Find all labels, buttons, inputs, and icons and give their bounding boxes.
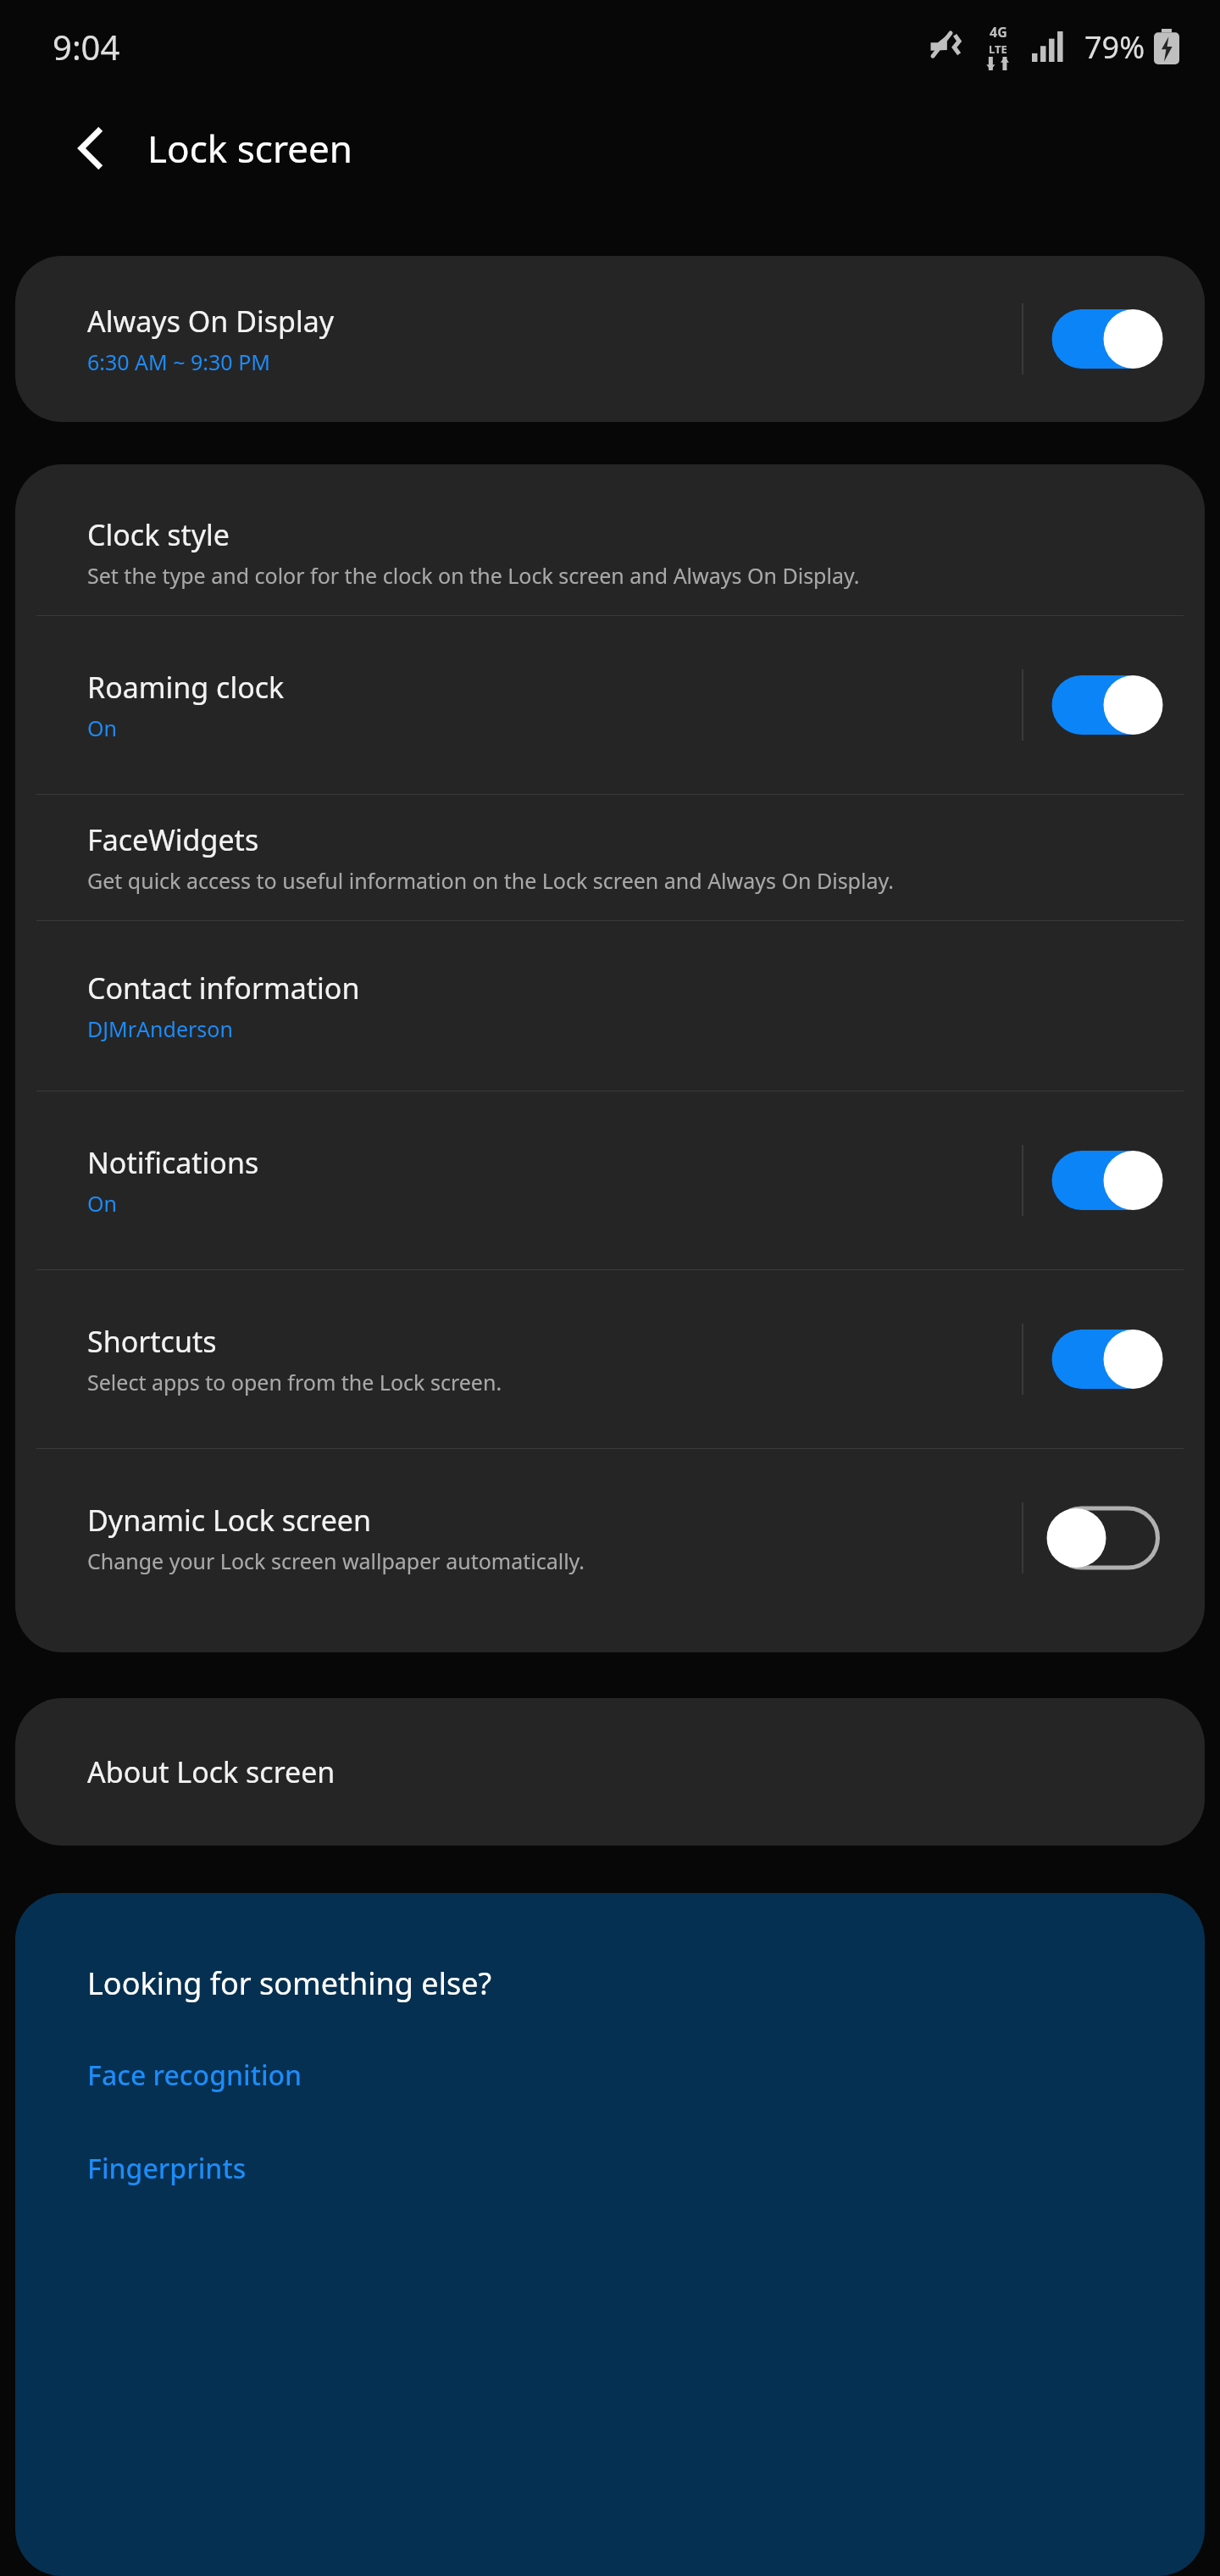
button[interactable]: Back [51,108,132,189]
button[interactable]: Contact information [15,921,1205,1091]
staticText: Notifications [87,1143,259,1182]
staticText: Fingerprints [87,2150,247,2187]
staticText: Always On Display [87,302,335,341]
staticText: Get quick access to useful information o… [87,866,894,895]
staticText: DJMrAnderson [87,1014,233,1043]
staticText: LTE [989,42,1007,57]
button[interactable]: Fingerprints [15,2140,1205,2197]
button[interactable]: Face recognition [15,2046,1205,2104]
staticText: 6:30 AM ~ 9:30 PM [87,347,270,376]
staticText: On [87,1189,117,1218]
button[interactable]: FaceWidgets [15,795,1205,920]
button[interactable]: Shortcuts [15,1270,1205,1448]
staticText: Shortcuts [87,1322,217,1361]
staticText: Dynamic Lock screen [87,1501,372,1540]
staticText: Change your Lock screen wallpaper automa… [87,1546,585,1575]
button[interactable]: Toggle on [1049,303,1161,375]
staticText: 4G [990,23,1007,42]
staticText: 79% [1084,26,1145,68]
button[interactable]: Toggle off [1049,1502,1161,1574]
staticText: Face recognition [87,2057,302,2094]
staticText: Looking for something else? [87,1963,492,2004]
staticText: 9:04 [53,24,120,69]
staticText: On [87,713,117,742]
button[interactable]: Toggle on [1049,1324,1161,1395]
button[interactable]: Always On Display [15,256,1205,422]
button[interactable]: Toggle on [1049,669,1161,741]
staticText: Clock style [87,515,230,554]
button[interactable]: Dynamic Lock screen [15,1449,1205,1627]
staticText: Roaming clock [87,668,285,707]
button[interactable]: Toggle on [1049,1145,1161,1216]
button[interactable]: Clock style [15,490,1205,615]
staticText: Select apps to open from the Lock screen… [87,1368,502,1396]
button[interactable]: Notifications [15,1091,1205,1269]
staticText: About Lock screen [87,1752,335,1791]
staticText: Contact information [87,969,360,1008]
staticText: Lock screen [147,123,353,174]
staticText: FaceWidgets [87,820,259,859]
button[interactable]: Roaming clock [15,616,1205,794]
staticText: Set the type and color for the clock on … [87,561,860,590]
button[interactable]: About Lock screen [15,1698,1205,1846]
